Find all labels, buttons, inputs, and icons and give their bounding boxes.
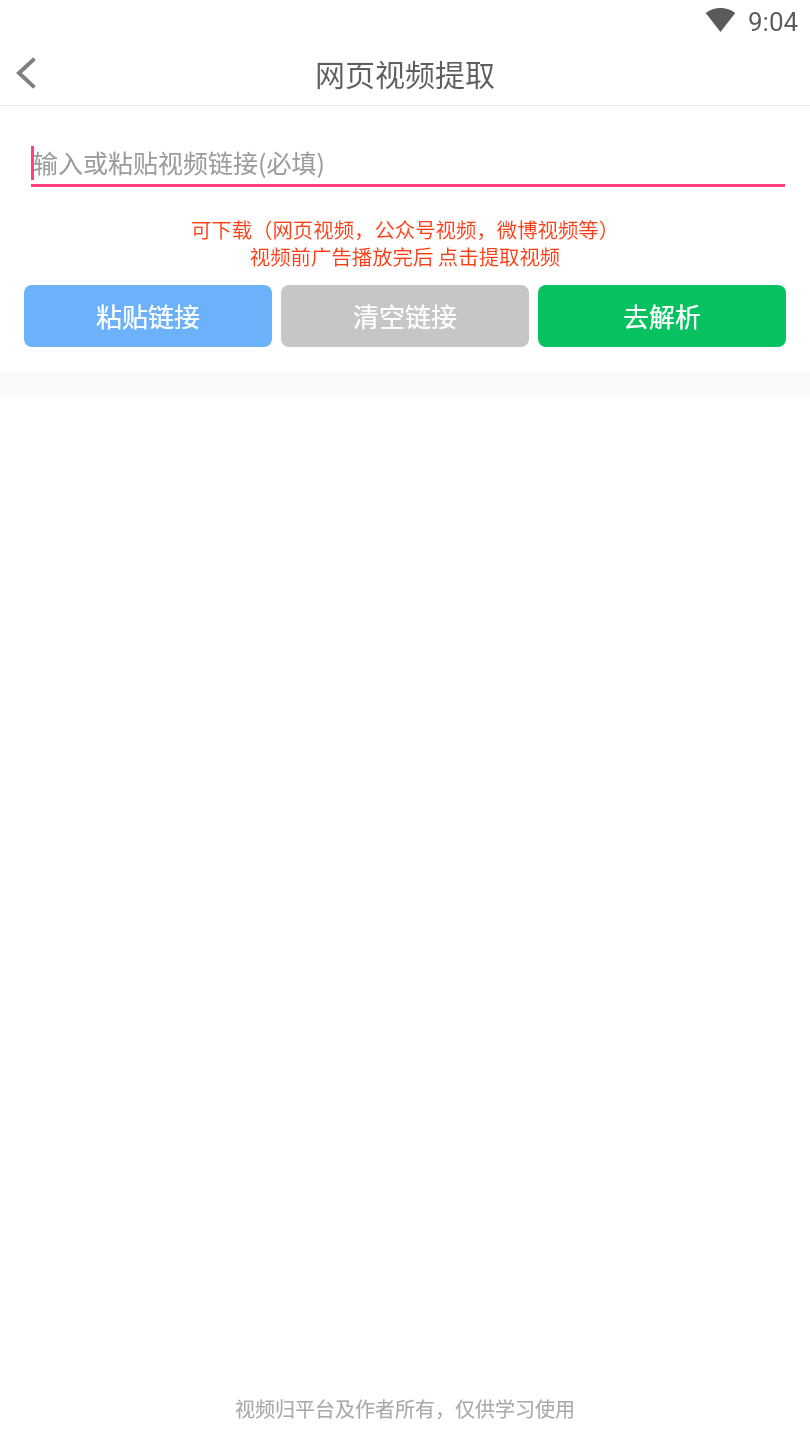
button[interactable]: 去解析 <box>538 285 786 347</box>
other: Wi-Fi signal <box>706 8 735 32</box>
staticText: 网页视频提取 <box>0 51 810 94</box>
staticText: 粘贴链接 <box>96 297 201 335</box>
button[interactable]: 清空链接 <box>281 285 529 347</box>
staticText: 清空链接 <box>353 297 458 335</box>
staticText: 可下载（网页视频，公众号视频，微博视频等） <box>0 214 810 244</box>
staticText: 9:04 <box>748 7 799 37</box>
button[interactable]: Video link input field <box>24 120 786 190</box>
button[interactable]: 粘贴链接 <box>24 285 272 347</box>
staticText: 输入或粘贴视频链接(必填) <box>33 144 325 180</box>
staticText: 视频前广告播放完后 点击提取视频 <box>0 241 810 271</box>
staticText: 去解析 <box>623 297 702 335</box>
button[interactable]: Back <box>0 43 62 105</box>
staticText: 视频归平台及作者所有，仅供学习使用 <box>0 1394 810 1423</box>
